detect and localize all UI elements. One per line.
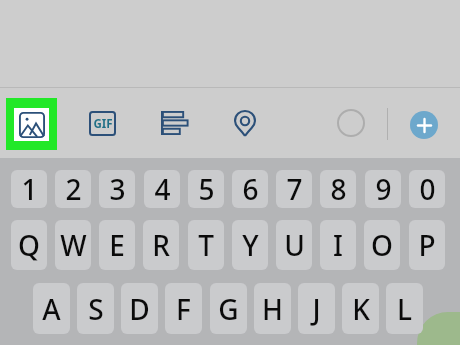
button[interactable]: Q (11, 220, 47, 270)
button[interactable]: I (320, 220, 356, 270)
button[interactable]: K (342, 283, 379, 334)
staticText: 2 (65, 170, 82, 208)
button[interactable]: 6 (232, 170, 268, 208)
button[interactable]: D (121, 283, 158, 334)
button[interactable]: GIF (89, 111, 116, 136)
staticText: Q (18, 226, 40, 264)
button[interactable]: H (254, 283, 291, 334)
staticText: Y (242, 226, 259, 264)
staticText: J (312, 290, 321, 328)
staticText: 5 (198, 170, 215, 208)
button[interactable]: A (33, 283, 70, 334)
button[interactable]: S (77, 283, 114, 334)
staticText: O (371, 226, 393, 264)
button[interactable]: Location (234, 110, 256, 137)
staticText: 3 (109, 170, 126, 208)
staticText: F (176, 290, 191, 328)
button[interactable]: 5 (188, 170, 224, 208)
staticText: K (352, 290, 370, 328)
button[interactable]: G (210, 283, 247, 334)
staticText: 7 (286, 170, 303, 208)
staticText: D (129, 290, 150, 328)
button[interactable]: Sticker (337, 109, 365, 137)
staticText: E (109, 226, 125, 264)
button[interactable]: 3 (99, 170, 135, 208)
button[interactable]: 0 (409, 170, 445, 208)
button[interactable]: Enter (417, 312, 460, 345)
button[interactable]: 2 (55, 170, 91, 208)
staticText: T (198, 226, 214, 264)
button[interactable]: J (298, 283, 335, 334)
button[interactable]: L (386, 283, 423, 334)
button[interactable]: Poll (161, 111, 187, 135)
staticText: W (60, 226, 87, 264)
staticText: U (284, 226, 305, 264)
staticText: L (397, 290, 412, 328)
button[interactable]: R (143, 220, 179, 270)
button[interactable]: U (276, 220, 312, 270)
staticText: R (152, 226, 170, 264)
staticText: S (88, 290, 104, 328)
button[interactable]: 4 (144, 170, 180, 208)
button[interactable]: O (364, 220, 400, 270)
staticText: GIF (93, 116, 113, 132)
staticText: 0 (419, 170, 436, 208)
button[interactable]: F (165, 283, 202, 334)
button[interactable]: T (188, 220, 224, 270)
button[interactable]: 7 (276, 170, 312, 208)
button[interactable]: 9 (365, 170, 401, 208)
button[interactable]: 1 (11, 170, 47, 208)
staticText: 6 (242, 170, 259, 208)
staticText: H (262, 290, 283, 328)
staticText: 9 (375, 170, 392, 208)
staticText: G (218, 290, 239, 328)
button[interactable]: 8 (320, 170, 356, 208)
staticText: 1 (21, 170, 38, 208)
button[interactable]: P (409, 220, 445, 270)
staticText: 4 (154, 170, 171, 208)
button[interactable]: Add (410, 111, 438, 139)
button[interactable]: Y (232, 220, 268, 270)
staticText: I (333, 226, 343, 264)
button[interactable]: W (55, 220, 91, 270)
staticText: 8 (330, 170, 347, 208)
staticText: P (418, 226, 436, 264)
button[interactable]: Photo (6, 98, 57, 150)
staticText: A (42, 290, 61, 328)
button[interactable]: E (99, 220, 135, 270)
